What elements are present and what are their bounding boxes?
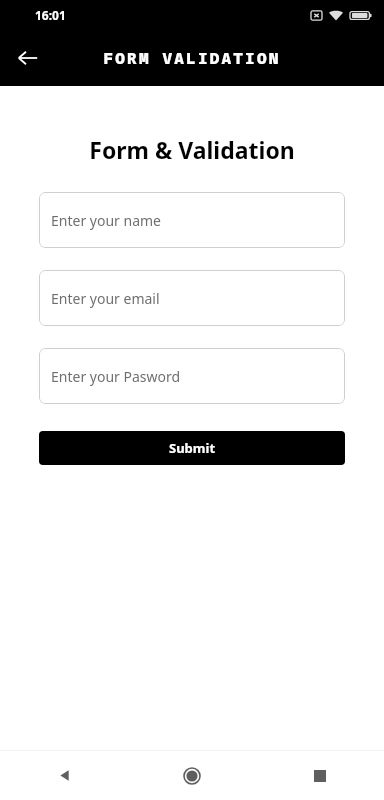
staticText: FORM VALIDATION	[103, 47, 281, 69]
button[interactable]: Enter your name	[39, 192, 345, 248]
button[interactable]: Home	[128, 751, 256, 800]
button[interactable]: Submit	[39, 431, 345, 465]
staticText: Enter your email	[51, 289, 160, 308]
button[interactable]: Enter your Pasword	[39, 348, 345, 404]
staticText: Enter your Pasword	[51, 367, 181, 386]
staticText: 16:01	[35, 7, 66, 23]
staticText: Form & Validation	[89, 134, 295, 165]
button[interactable]: Back	[0, 751, 128, 800]
button[interactable]: Back	[8, 38, 48, 78]
button[interactable]: Recent apps	[256, 751, 384, 800]
button[interactable]: Enter your email	[39, 270, 345, 326]
staticText: Submit	[169, 439, 216, 457]
staticText: Enter your name	[51, 211, 161, 230]
